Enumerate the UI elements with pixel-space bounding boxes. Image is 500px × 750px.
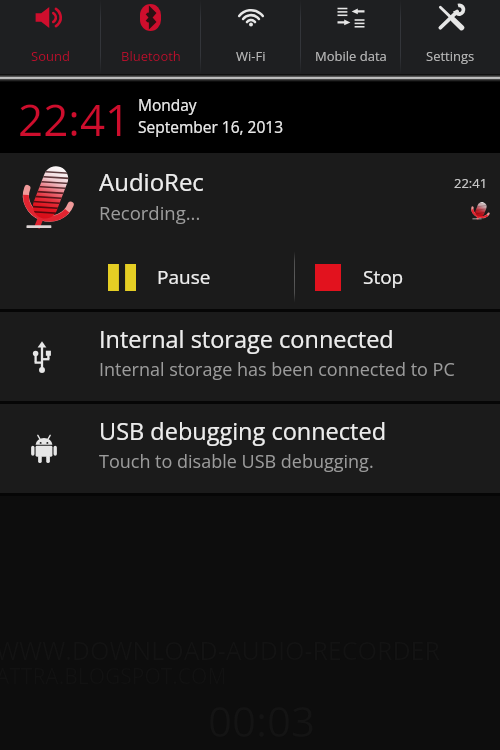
- other: USB: [31, 340, 53, 374]
- staticText: Settings: [426, 47, 475, 65]
- button[interactable]: Mobile data: [301, 0, 400, 74]
- staticText: Wi-Fi: [236, 47, 266, 65]
- staticText: September 16, 2013: [138, 116, 284, 137]
- staticText: Recording...: [99, 200, 201, 225]
- staticText: USB debugging connected: [99, 415, 387, 447]
- button[interactable]: Wi-Fi: [201, 0, 300, 74]
- button[interactable]: Sound: [0, 0, 100, 74]
- staticText: 22:41: [454, 174, 488, 192]
- button[interactable]: Android: [0, 404, 500, 493]
- staticText: Internal storage has been connected to P…: [99, 357, 455, 382]
- other: Sound: [35, 5, 66, 30]
- button[interactable]: Microphone: [0, 153, 500, 245]
- other: Settings: [437, 4, 465, 31]
- button[interactable]: Pause: [93, 245, 294, 309]
- staticText: Internal storage connected: [99, 323, 394, 355]
- staticText: AudioRec: [99, 165, 204, 198]
- staticText: Pause: [157, 264, 211, 290]
- other: Mobile data: [336, 5, 366, 30]
- staticText: Bluetooth: [121, 47, 181, 65]
- staticText: Monday: [138, 94, 197, 115]
- other: Wi-Fi: [236, 6, 266, 30]
- staticText: Mobile data: [315, 47, 387, 65]
- other: Bluetooth: [140, 4, 161, 31]
- staticText: Touch to disable USB debugging.: [99, 449, 374, 474]
- button[interactable]: Stop: [295, 245, 500, 309]
- button[interactable]: Settings: [401, 0, 500, 74]
- other: Android: [30, 432, 58, 465]
- staticText: Sound: [31, 47, 70, 65]
- button[interactable]: USB: [0, 312, 500, 401]
- other: Microphone: [470, 201, 490, 221]
- staticText: Stop: [363, 264, 404, 290]
- staticText: 22:41: [18, 89, 131, 149]
- button[interactable]: Bluetooth: [101, 0, 200, 74]
- other: Microphone: [20, 162, 74, 234]
